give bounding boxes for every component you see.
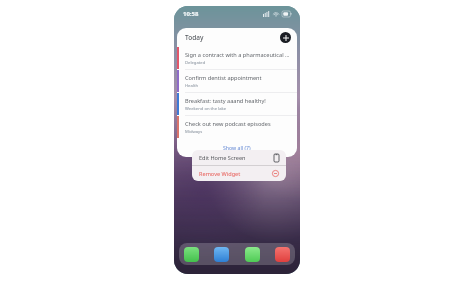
staticText: Edit Home Screen xyxy=(199,154,246,162)
button[interactable]: Today xyxy=(177,28,297,47)
staticText: Health xyxy=(185,83,198,89)
staticText: Weekend on the lake xyxy=(185,106,227,112)
button[interactable]: Show all (7) xyxy=(177,138,297,157)
button[interactable]: Edit Home Screen xyxy=(192,150,286,165)
staticText: Today xyxy=(185,33,204,42)
other: Edit Home Screen xyxy=(274,154,279,162)
button[interactable]: Add task xyxy=(280,32,291,43)
staticText: Check out new podcast episodes xyxy=(185,120,271,128)
staticText: Midways xyxy=(185,129,203,135)
button[interactable]: Music xyxy=(275,247,290,262)
button[interactable]: Check out new podcast episodes xyxy=(177,116,297,138)
button[interactable]: Confirm dentist appointment xyxy=(177,70,297,92)
button[interactable]: Safari xyxy=(214,247,229,262)
staticText: Breakfast: tasty aaand healthy! xyxy=(185,97,266,105)
staticText: 10:58 xyxy=(183,10,199,18)
staticText: Sign a contract with a pharmaceutical co… xyxy=(185,51,292,59)
staticText: Show all (7) xyxy=(223,144,251,151)
other: Remove Widget xyxy=(272,170,279,177)
button[interactable]: Phone xyxy=(184,247,199,262)
staticText: Remove Widget xyxy=(199,170,241,178)
button[interactable]: Sign a contract with a pharmaceutical co… xyxy=(177,47,297,69)
button[interactable]: Remove Widget xyxy=(192,166,286,181)
staticText: Confirm dentist appointment xyxy=(185,74,262,82)
staticText: Delegated xyxy=(185,60,206,66)
button[interactable]: Breakfast: tasty aaand healthy! xyxy=(177,93,297,115)
button[interactable]: Messages xyxy=(245,247,260,262)
